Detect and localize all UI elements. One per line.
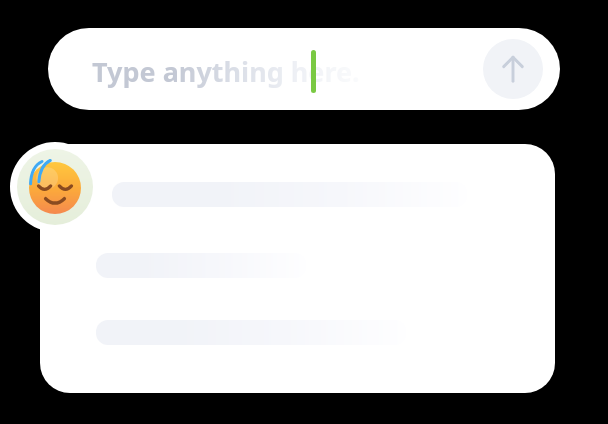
button[interactable] [40,144,555,393]
button[interactable]: Send [483,39,543,99]
staticText: Type anything here. [92,53,360,89]
button[interactable]: Avatar, relieved face [10,142,100,232]
button[interactable] [48,28,560,110]
